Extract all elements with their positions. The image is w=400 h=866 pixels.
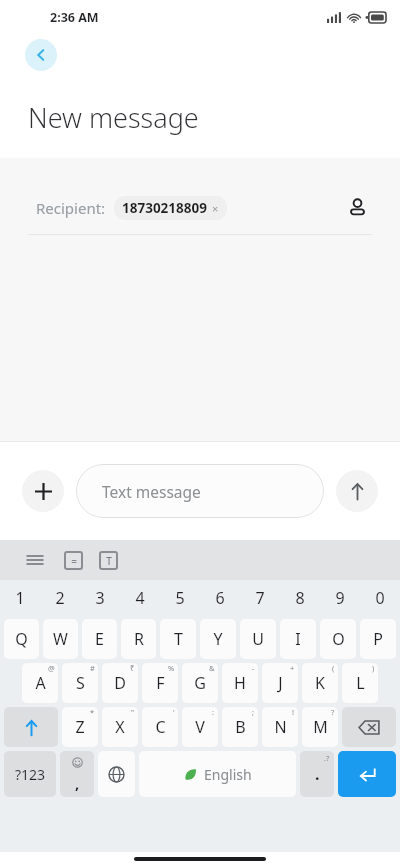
button[interactable]: U <box>240 619 276 659</box>
button[interactable]: T <box>160 619 196 659</box>
button[interactable]: Text style <box>99 551 118 570</box>
button[interactable]: H <box>222 663 258 703</box>
staticText: X <box>115 716 125 738</box>
button[interactable]: 1 <box>0 580 40 616</box>
button[interactable]: V <box>182 707 218 747</box>
button[interactable]: Add attachment <box>22 470 64 512</box>
button[interactable]: 9 <box>320 580 360 616</box>
staticText: ?123 <box>15 765 46 784</box>
button[interactable]: Text message <box>76 464 324 518</box>
staticText: F <box>156 672 165 694</box>
button[interactable]: N <box>262 707 298 747</box>
button[interactable]: Back <box>25 39 57 71</box>
button[interactable]: B <box>222 707 258 747</box>
staticText: T <box>106 554 112 568</box>
button[interactable]: I <box>280 619 316 659</box>
staticText: 2:36 AM <box>50 9 99 26</box>
staticText: 7 <box>255 587 265 609</box>
button[interactable]: C <box>142 707 178 747</box>
button[interactable]: 4 <box>120 580 160 616</box>
button[interactable]: Menu <box>22 547 48 573</box>
staticText: H <box>234 672 246 694</box>
staticText: Q <box>15 628 28 650</box>
button[interactable]: 2 <box>40 580 80 616</box>
staticText: J <box>278 672 283 694</box>
staticText: I <box>295 628 301 650</box>
staticText: & <box>209 663 215 673</box>
button[interactable]: Z <box>62 707 98 747</box>
staticText: " <box>131 707 135 717</box>
staticText: = <box>71 554 77 568</box>
staticText: M <box>313 716 328 738</box>
staticText: : <box>212 707 215 717</box>
staticText: D <box>114 672 126 694</box>
button[interactable]: 3 <box>80 580 120 616</box>
button[interactable]: S <box>62 663 98 703</box>
button[interactable]: 18730218809 <box>114 196 227 220</box>
button[interactable]: W <box>43 619 78 659</box>
button[interactable]: G <box>182 663 218 703</box>
staticText: × <box>212 201 219 216</box>
button[interactable]: Emoji and comma <box>60 751 94 797</box>
staticText: 0 <box>375 587 385 609</box>
button[interactable]: K <box>302 663 338 703</box>
button[interactable]: X <box>102 707 138 747</box>
staticText: Recipient: <box>36 198 106 218</box>
button[interactable]: R <box>121 619 156 659</box>
button[interactable]: D <box>102 663 138 703</box>
staticText: Y <box>213 628 223 650</box>
button[interactable]: Y <box>200 619 236 659</box>
button[interactable]: 5 <box>160 580 200 616</box>
staticText: R <box>134 628 144 650</box>
button[interactable]: Q <box>4 619 39 659</box>
staticText: English <box>204 765 252 784</box>
staticText: ! <box>292 707 295 717</box>
staticText: # <box>90 663 95 673</box>
staticText: 18730218809 <box>122 199 207 217</box>
button[interactable]: Send <box>336 470 378 512</box>
button[interactable]: ?123 <box>4 751 56 797</box>
staticText: 2 <box>55 587 65 609</box>
staticText: + <box>290 663 295 673</box>
staticText: ; <box>252 707 255 717</box>
button[interactable]: Backspace <box>342 707 396 747</box>
staticText: T <box>174 628 183 650</box>
button[interactable]: Change language <box>98 751 135 797</box>
button[interactable]: 7 <box>240 580 280 616</box>
staticText: A <box>35 672 46 694</box>
staticText: 4 <box>135 587 145 609</box>
staticText: New message <box>28 99 199 136</box>
staticText: K <box>315 672 325 694</box>
button[interactable]: E <box>82 619 117 659</box>
button[interactable]: Layout <box>64 551 83 570</box>
staticText: 3 <box>95 587 105 609</box>
button[interactable]: English <box>139 751 296 797</box>
staticText: U <box>252 628 264 650</box>
button[interactable]: Shift <box>4 707 58 747</box>
button[interactable]: Enter <box>338 751 396 797</box>
button[interactable]: Choose contact <box>340 190 374 224</box>
button[interactable]: F <box>142 663 178 703</box>
staticText: 8 <box>295 587 305 609</box>
staticText: L <box>356 672 365 694</box>
button[interactable]: 6 <box>200 580 240 616</box>
staticText: S <box>76 672 85 694</box>
staticText: P <box>373 628 383 650</box>
button[interactable]: .? <box>300 751 334 797</box>
button[interactable]: P <box>360 619 396 659</box>
button[interactable]: 8 <box>280 580 320 616</box>
staticText: W <box>53 628 68 650</box>
staticText: 5 <box>175 587 185 609</box>
button[interactable]: J <box>262 663 298 703</box>
staticText: * <box>90 707 95 717</box>
button[interactable]: A <box>22 663 58 703</box>
staticText: Text message <box>102 481 201 502</box>
staticText: 9 <box>335 587 345 609</box>
staticText: O <box>332 628 345 650</box>
button[interactable]: M <box>302 707 338 747</box>
staticText: 1 <box>15 587 25 609</box>
button[interactable]: L <box>342 663 378 703</box>
button[interactable]: O <box>320 619 356 659</box>
staticText: N <box>274 716 287 738</box>
button[interactable]: 0 <box>360 580 400 616</box>
